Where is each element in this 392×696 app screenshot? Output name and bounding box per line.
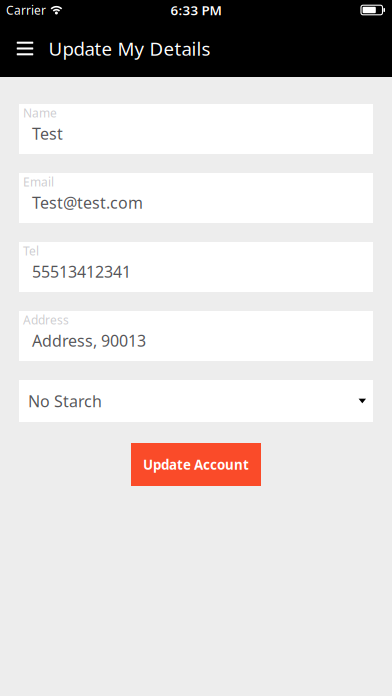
button[interactable]: Name xyxy=(19,104,373,154)
staticText: Address, 90013 xyxy=(32,330,146,351)
staticText: Test xyxy=(32,123,63,144)
button[interactable]: Tel xyxy=(19,242,373,292)
staticText: 6:33 PM xyxy=(170,1,221,19)
staticText: Carrier xyxy=(6,2,46,18)
button[interactable]: Address xyxy=(19,311,373,361)
staticText: No Starch xyxy=(28,390,102,412)
staticText: Tel xyxy=(23,243,39,259)
button[interactable]: Update Account xyxy=(131,443,261,486)
staticText: Email xyxy=(23,174,54,190)
button[interactable]: No Starch xyxy=(19,380,373,422)
button[interactable]: Menu xyxy=(8,20,42,77)
staticText: Update Account xyxy=(143,456,249,473)
staticText: Update My Details xyxy=(48,36,210,61)
staticText: Address xyxy=(23,312,69,328)
staticText: 55513412341 xyxy=(32,261,131,282)
staticText: Name xyxy=(23,105,57,121)
button[interactable]: Email xyxy=(19,173,373,223)
staticText: Test@test.com xyxy=(32,192,143,213)
